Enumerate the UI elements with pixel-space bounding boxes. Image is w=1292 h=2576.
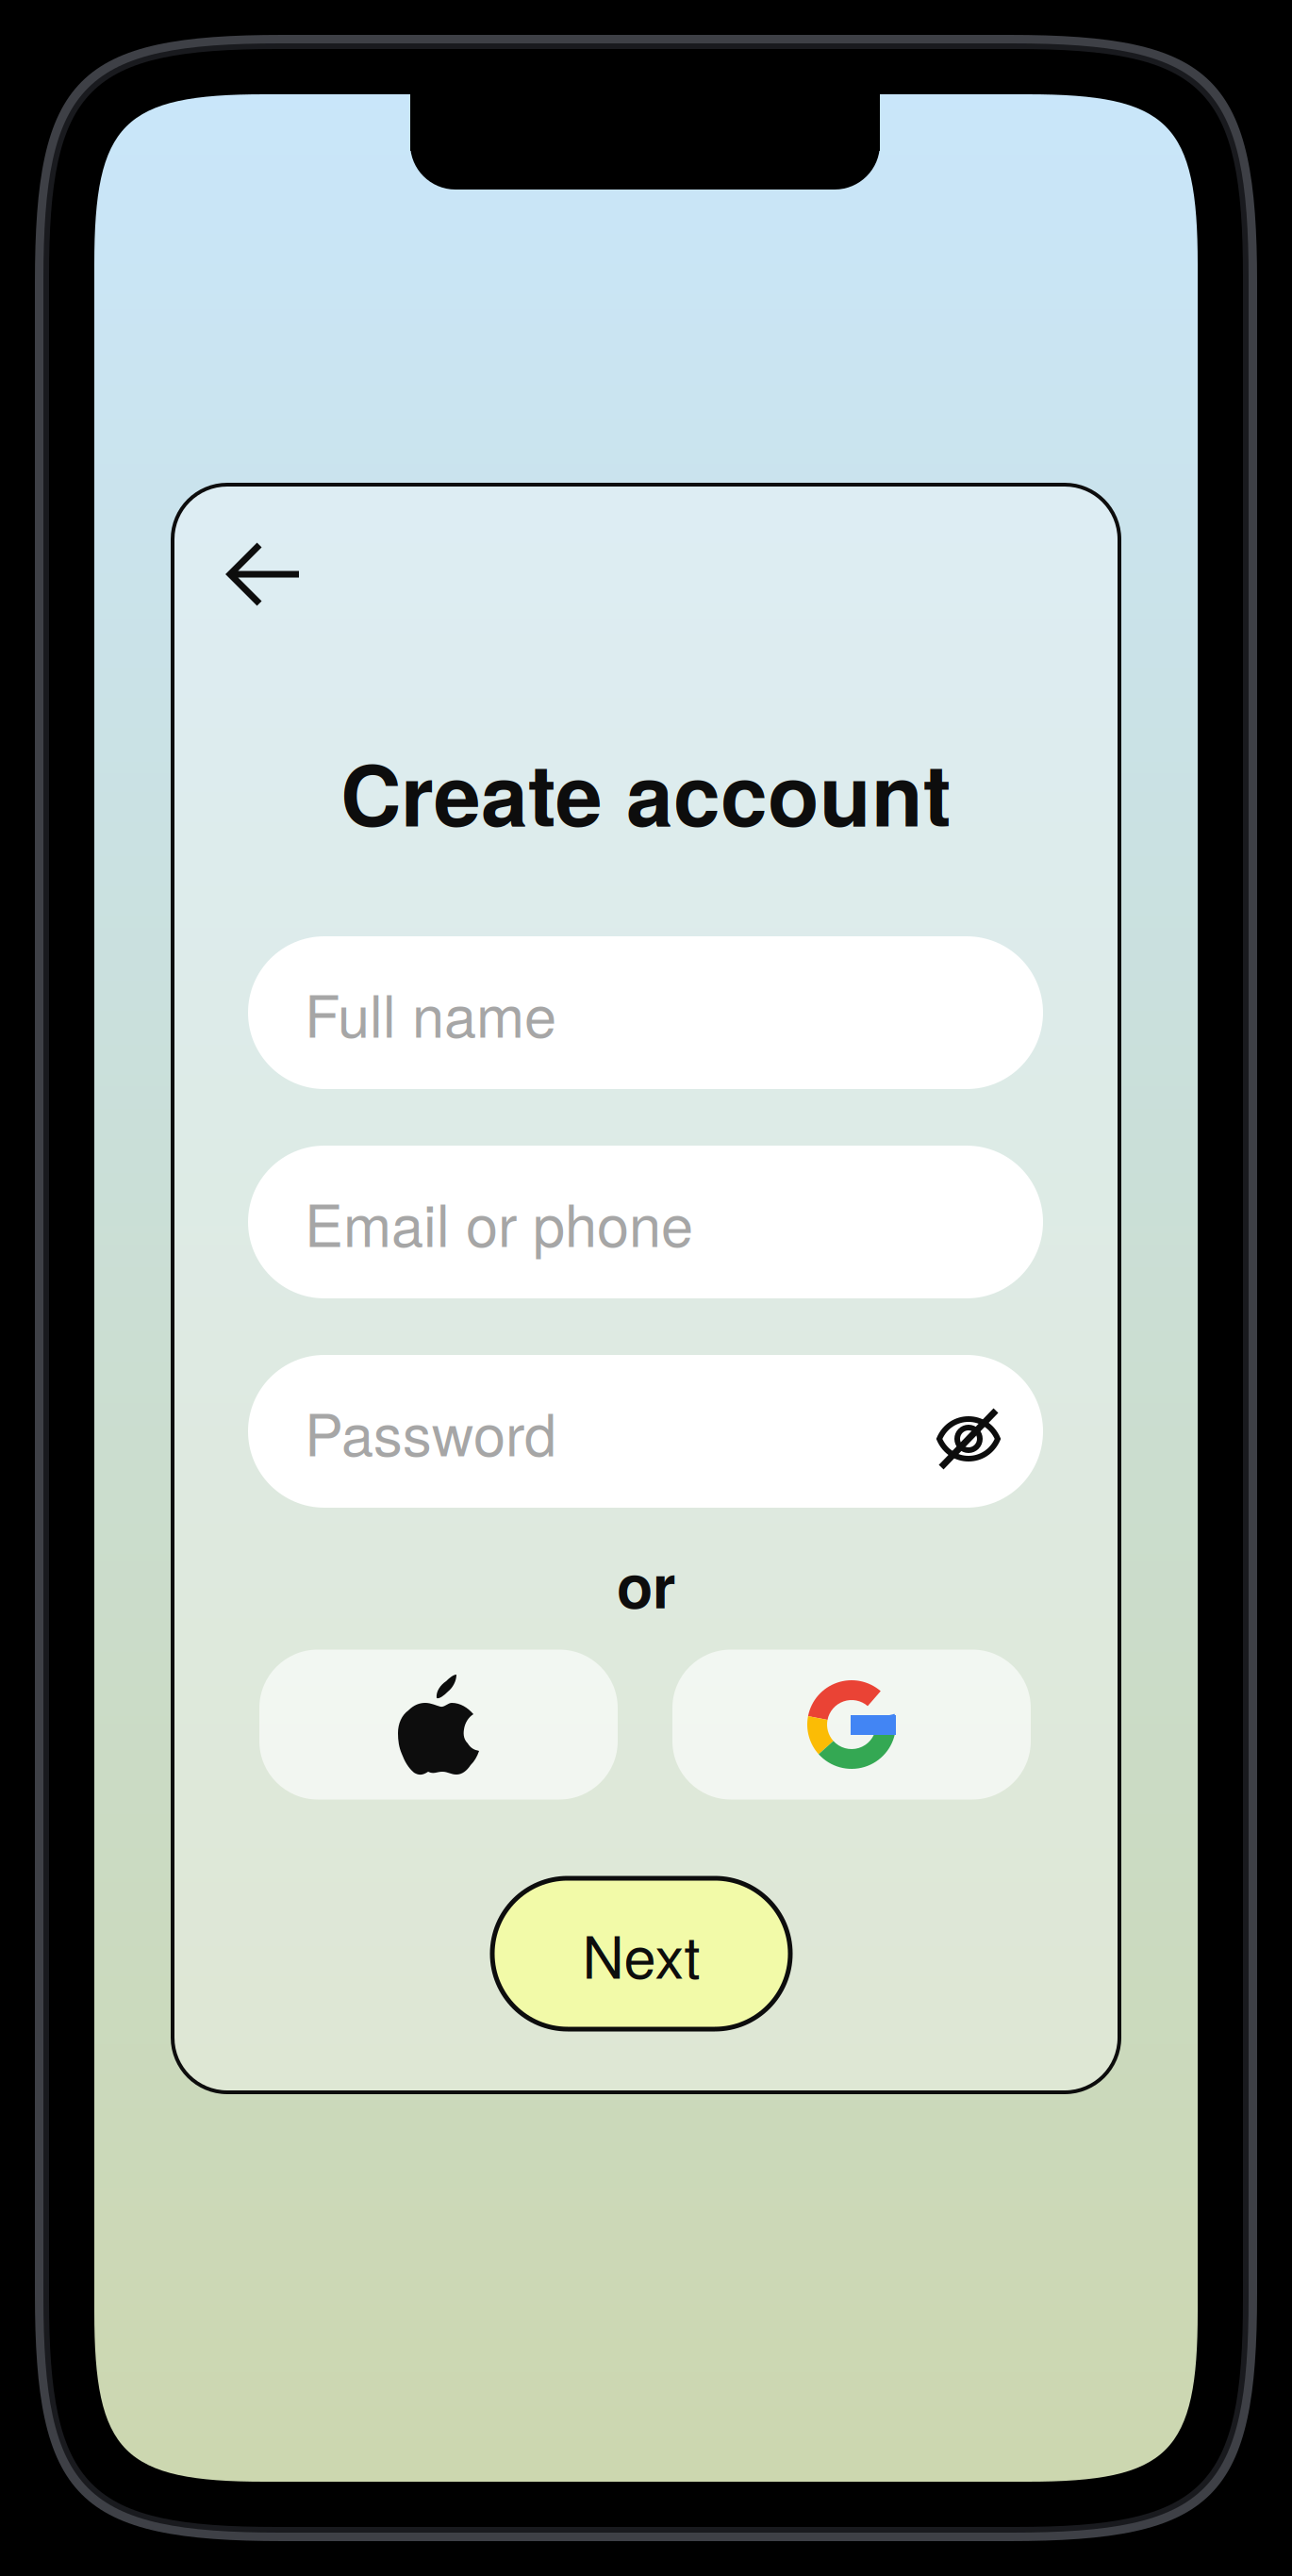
staticText: Next: [582, 1912, 700, 1995]
button[interactable]: Back: [190, 504, 340, 645]
staticText: Create account: [340, 732, 952, 852]
button[interactable]: Show password: [925, 1355, 1012, 1508]
staticText: Email or phone: [305, 1181, 693, 1263]
staticText: Full name: [305, 971, 556, 1054]
button[interactable]: Next: [492, 1878, 790, 2029]
button[interactable]: Sign up with Apple: [259, 1650, 618, 1800]
staticText: Password: [305, 1390, 556, 1473]
staticText: or: [617, 1542, 675, 1626]
button[interactable]: Sign up with Google: [672, 1650, 1031, 1800]
